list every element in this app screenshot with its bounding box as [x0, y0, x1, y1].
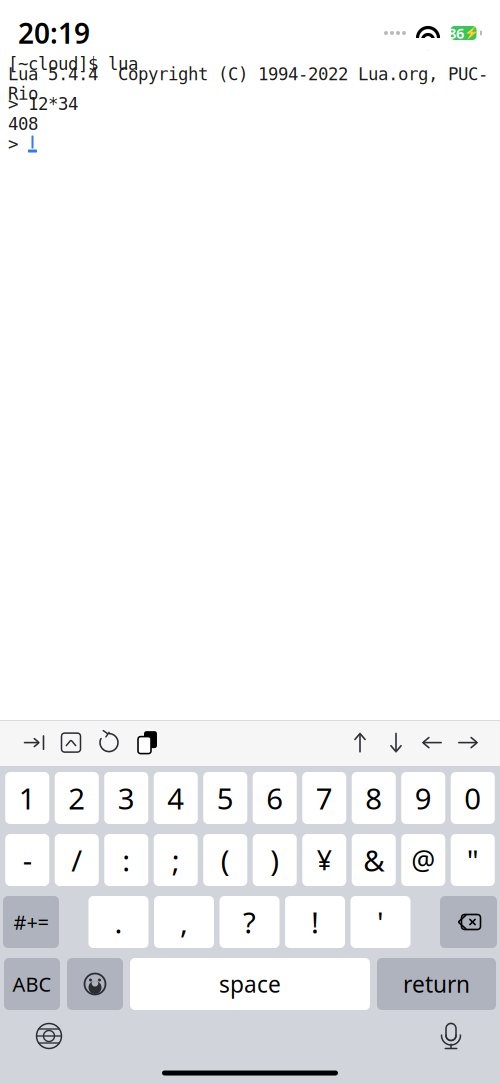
button[interactable]: , — [154, 896, 214, 948]
button[interactable]: ¥ — [302, 834, 346, 886]
staticText: 5 — [217, 778, 234, 817]
staticText: ' — [377, 902, 384, 941]
staticText: ABC — [12, 971, 51, 997]
staticText: #+= — [13, 909, 48, 935]
staticText: ) — [270, 840, 279, 879]
button[interactable]: . — [88, 896, 148, 948]
staticText: " — [467, 840, 479, 879]
button[interactable]: - — [5, 834, 49, 886]
staticText: [~cloud]$ lua — [8, 54, 138, 74]
staticText: @ — [411, 842, 435, 878]
button[interactable]: Up — [342, 723, 378, 763]
button[interactable]: ( — [203, 834, 247, 886]
staticText: ? — [243, 902, 256, 941]
button[interactable]: @ — [401, 834, 445, 886]
button[interactable]: Delete — [440, 896, 497, 948]
button[interactable]: Left — [414, 723, 450, 763]
button[interactable]: 7 — [302, 772, 346, 824]
staticText: & — [363, 840, 384, 879]
button[interactable]: : — [104, 834, 148, 886]
staticText: . — [114, 902, 122, 941]
button[interactable]: ! — [285, 896, 345, 948]
staticText: space — [219, 969, 281, 999]
staticText: 9 — [415, 778, 432, 817]
staticText: , — [180, 902, 188, 941]
button[interactable]: #+= — [3, 896, 59, 948]
staticText: ¥ — [317, 842, 332, 878]
button[interactable]: Down — [378, 723, 414, 763]
staticText: 3 — [118, 778, 135, 817]
button[interactable]: & — [352, 834, 396, 886]
button[interactable]: 5 — [203, 772, 247, 824]
staticText: > 12*34 — [8, 94, 78, 114]
button[interactable]: / — [55, 834, 99, 886]
button[interactable]: Tab — [14, 723, 52, 763]
staticText: / — [71, 840, 82, 879]
staticText: Lua 5.4.4 Copyright (C) 1994-2022 Lua.or… — [8, 64, 488, 104]
staticText: ; — [172, 840, 180, 879]
button[interactable]: ' — [350, 896, 410, 948]
button[interactable]: Next keyboard — [22, 1015, 76, 1057]
button[interactable]: return — [377, 958, 496, 1010]
staticText: 6 — [266, 778, 283, 817]
staticText: > — [8, 134, 28, 154]
button[interactable]: 9 — [401, 772, 445, 824]
button[interactable]: Paste — [128, 723, 166, 763]
button[interactable]: Dictation — [424, 1015, 478, 1057]
staticText: - — [23, 840, 32, 879]
button[interactable]: Control — [52, 723, 90, 763]
button[interactable]: History — [90, 723, 128, 763]
staticText: : — [122, 840, 130, 879]
button[interactable]: ) — [253, 834, 297, 886]
staticText: 7 — [316, 778, 333, 817]
button[interactable]: 3 — [104, 772, 148, 824]
staticText: 2 — [68, 778, 85, 817]
button[interactable]: 2 — [55, 772, 99, 824]
staticText: 408 — [8, 114, 38, 134]
button[interactable]: space — [130, 958, 370, 1010]
staticText: 86 — [448, 23, 464, 43]
staticText: 8 — [365, 778, 382, 817]
button[interactable]: Emoji — [67, 958, 123, 1010]
button[interactable]: 1 — [5, 772, 49, 824]
button[interactable]: 8 — [352, 772, 396, 824]
staticText: 0 — [464, 778, 481, 817]
staticText: return — [403, 969, 470, 999]
staticText: ( — [221, 840, 230, 879]
button[interactable]: 4 — [154, 772, 198, 824]
button[interactable]: ? — [219, 896, 279, 948]
button[interactable]: " — [451, 834, 495, 886]
staticText: 20:19 — [18, 14, 90, 52]
staticText: ⚡ — [464, 26, 479, 40]
button[interactable]: Right — [450, 723, 486, 763]
button[interactable]: ; — [154, 834, 198, 886]
button[interactable]: 6 — [253, 772, 297, 824]
button[interactable]: 0 — [451, 772, 495, 824]
button[interactable]: ABC — [4, 958, 60, 1010]
staticText: 1 — [19, 778, 36, 817]
staticText: 4 — [167, 778, 184, 817]
staticText: ! — [311, 902, 319, 941]
